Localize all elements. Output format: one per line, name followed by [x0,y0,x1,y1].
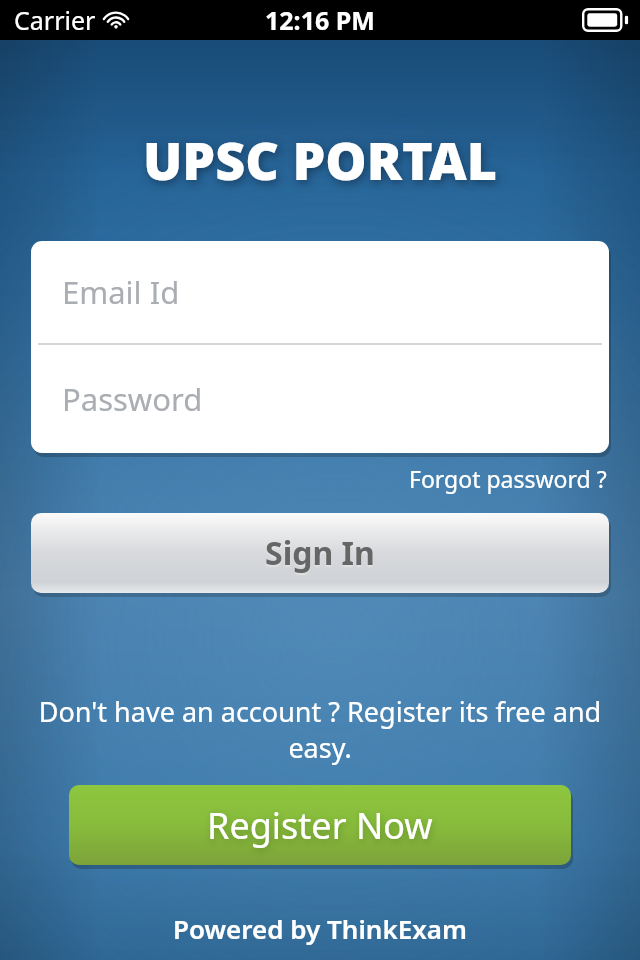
button[interactable]: Sign In [31,513,609,593]
staticText: UPSC PORTAL [143,124,498,195]
staticText: Register Now [207,801,433,850]
other: Wi-Fi signal [104,11,128,29]
button[interactable]: Forgot password ? [407,460,609,497]
staticText: Password [62,378,203,420]
staticText: Don't have an account ? Register its fre… [36,693,604,766]
staticText: Carrier [14,3,96,37]
staticText: Sign In [265,531,375,575]
other: Battery full [582,8,628,32]
button[interactable]: Password [31,345,609,453]
button[interactable]: Email Id [31,241,609,343]
button[interactable]: Register Now [69,785,571,865]
staticText: 12:16 PM [265,3,375,37]
staticText: Email Id [62,271,180,313]
staticText: Forgot password ? [409,463,607,494]
staticText: Powered by ThinkExam [173,911,467,946]
